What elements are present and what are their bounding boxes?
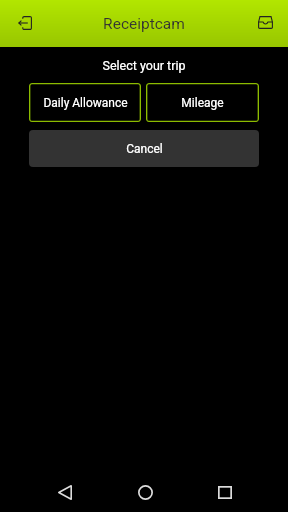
button[interactable]: Inbox bbox=[241, 0, 288, 47]
staticText: Cancel bbox=[126, 142, 163, 156]
staticText: Mileage bbox=[181, 96, 224, 110]
button[interactable]: Log out bbox=[0, 0, 47, 47]
button[interactable]: Recent apps bbox=[185, 469, 265, 512]
button[interactable]: Back bbox=[24, 469, 105, 512]
button[interactable]: Cancel bbox=[29, 130, 259, 167]
button[interactable]: Mileage bbox=[146, 83, 259, 122]
button[interactable]: Daily Allowance bbox=[29, 83, 141, 122]
staticText: Receiptcam bbox=[103, 15, 185, 33]
button[interactable]: Home bbox=[105, 469, 185, 512]
staticText: Select your trip bbox=[102, 58, 186, 73]
staticText: Daily Allowance bbox=[43, 96, 128, 110]
